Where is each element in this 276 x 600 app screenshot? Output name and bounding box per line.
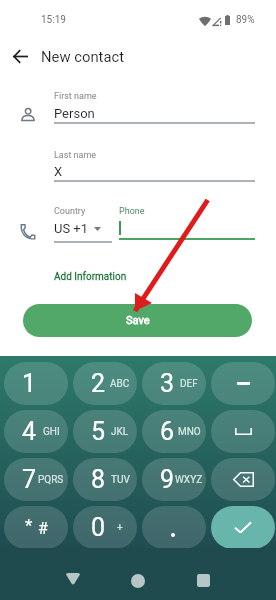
staticText: 2 — [91, 369, 106, 398]
staticText: GHI — [43, 426, 60, 438]
button[interactable]: 4 — [4, 410, 68, 453]
staticText: X — [54, 164, 63, 179]
button[interactable]: Recent apps — [183, 560, 223, 600]
button[interactable]: Backspace — [211, 458, 275, 501]
staticText: Last name — [54, 150, 97, 161]
staticText: Country — [54, 206, 86, 217]
staticText: 15:19 — [41, 14, 66, 26]
staticText: 7 — [22, 465, 37, 494]
button[interactable]: 1 — [4, 362, 68, 405]
button[interactable]: Save — [23, 304, 252, 337]
button[interactable]: Back — [0, 36, 40, 76]
button[interactable]: 6 — [142, 410, 206, 453]
staticText: 6 — [160, 417, 175, 446]
button[interactable]: Home — [118, 561, 158, 600]
staticText: New contact — [41, 48, 125, 65]
button[interactable]: 9 — [142, 458, 206, 501]
button[interactable]: * — [4, 506, 68, 549]
staticText: TUV — [111, 474, 130, 486]
staticText: PQRS — [38, 474, 64, 486]
staticText: 1 — [22, 369, 37, 398]
staticText: MNO — [178, 426, 201, 438]
staticText: 8 — [91, 465, 106, 494]
staticText: Phone — [119, 206, 145, 217]
staticText: DEF — [180, 378, 198, 390]
staticText: JKL — [111, 426, 129, 438]
staticText: 9 — [160, 465, 175, 494]
staticText: Add Information — [54, 271, 127, 283]
staticText: 89% — [236, 14, 255, 26]
staticText: First name — [54, 91, 97, 102]
button[interactable]: Space — [211, 410, 275, 453]
button[interactable]: Enter — [211, 506, 275, 549]
button[interactable]: Back — [53, 559, 93, 599]
staticText: ABC — [110, 378, 130, 390]
button[interactable]: 3 — [142, 362, 206, 405]
staticText: * — [25, 515, 33, 535]
staticText: US +1 — [54, 221, 89, 236]
staticText: 0 — [91, 513, 106, 542]
button[interactable]: Add Information — [54, 271, 127, 283]
button[interactable]: 2 — [73, 362, 137, 405]
staticText: 5 — [91, 417, 106, 446]
staticText: # — [38, 519, 48, 538]
staticText: 4 — [22, 417, 37, 446]
button[interactable]: 5 — [73, 410, 137, 453]
staticText: Save — [126, 314, 150, 327]
staticText: Person — [54, 106, 95, 121]
button[interactable] — [142, 506, 206, 549]
button[interactable]: 7 — [4, 458, 68, 501]
button[interactable]: Dash — [211, 362, 275, 405]
staticText: 3 — [160, 369, 175, 398]
button[interactable]: 8 — [73, 458, 137, 501]
button[interactable]: 0 — [73, 506, 137, 549]
staticText: + — [117, 522, 123, 534]
staticText: WXYZ — [175, 474, 203, 486]
